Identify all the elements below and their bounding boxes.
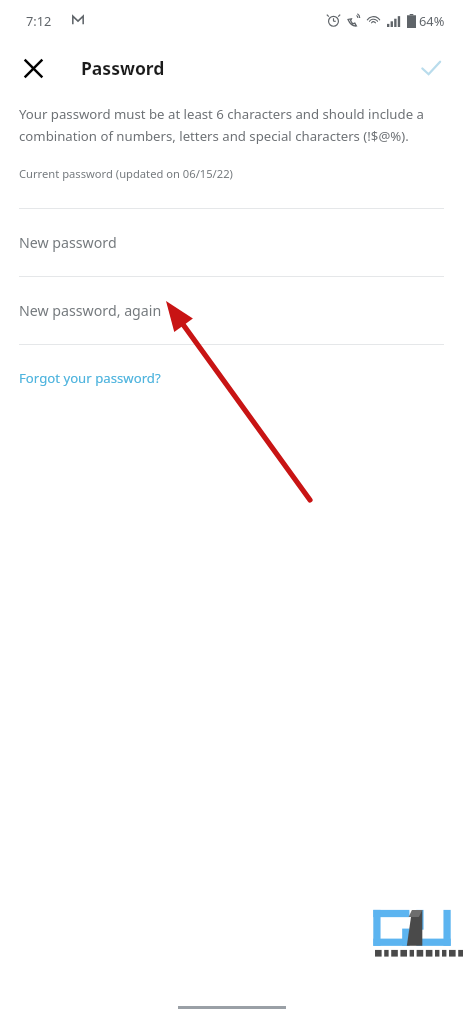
staticText: Password: [81, 56, 165, 80]
staticText: New password, again: [19, 301, 162, 320]
button[interactable]: Close: [12, 47, 54, 89]
staticText: 64%: [419, 12, 445, 29]
staticText: Forgot your password?: [19, 369, 161, 387]
staticText: Your password must be at least 6 charact…: [19, 105, 443, 145]
button[interactable]: New password: [0, 209, 463, 276]
button[interactable]: Save: [409, 46, 453, 90]
button[interactable]: Forgot your password?: [0, 366, 180, 390]
staticText: Current password (updated on 06/15/22): [19, 166, 233, 181]
button[interactable]: New password, again: [0, 277, 463, 344]
staticText: 7:12: [26, 12, 52, 29]
staticText: New password: [19, 233, 117, 252]
